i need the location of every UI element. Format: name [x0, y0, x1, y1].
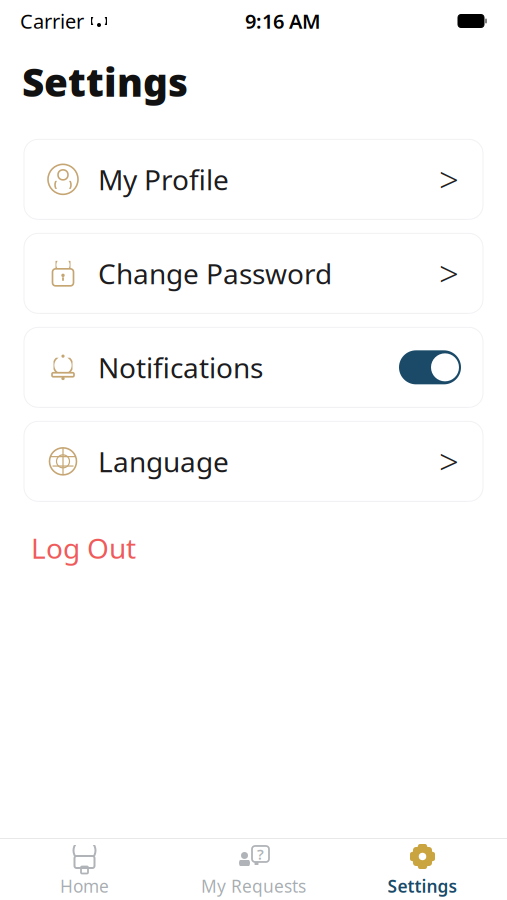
staticText: Notifications	[98, 349, 263, 386]
staticText: >	[439, 438, 459, 484]
button[interactable]: Notifications	[24, 327, 483, 407]
staticText: >	[439, 250, 459, 296]
staticText: My Profile	[98, 161, 229, 198]
button[interactable]: Log Out	[31, 521, 136, 574]
staticText: Log Out	[31, 529, 136, 566]
staticText: Settings	[387, 874, 457, 897]
button[interactable]: Language	[24, 421, 483, 501]
staticText: Home	[60, 874, 109, 897]
button[interactable]: Settings	[338, 833, 507, 900]
staticText: ?	[257, 844, 264, 864]
staticText: >	[439, 156, 459, 202]
staticText: My Requests	[201, 874, 306, 897]
staticText: Language	[98, 443, 229, 480]
button[interactable]: Change Password	[24, 233, 483, 313]
button[interactable]: My Profile	[24, 139, 483, 219]
staticText: Change Password	[98, 255, 332, 292]
button[interactable]: ?	[169, 833, 338, 900]
staticText: Settings	[22, 56, 188, 107]
staticText: 9:16 AM	[245, 8, 321, 34]
button[interactable]: Home	[0, 833, 169, 900]
staticText: Carrier	[20, 8, 84, 34]
